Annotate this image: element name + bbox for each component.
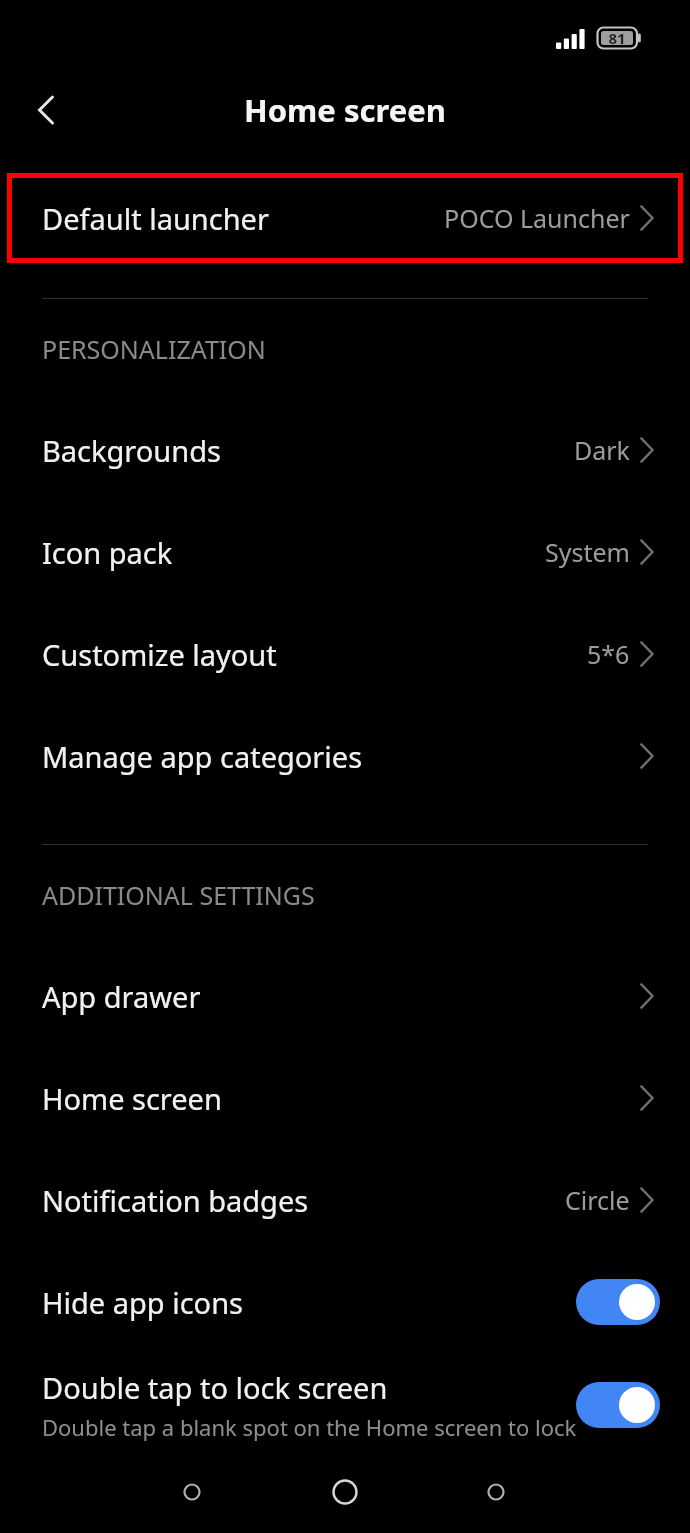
button[interactable]: App drawer xyxy=(0,945,690,1047)
button[interactable]: Default launcher xyxy=(0,173,690,263)
staticText: App drawer xyxy=(42,977,201,1016)
button[interactable]: Backgrounds xyxy=(0,399,690,501)
button[interactable]: Home screen xyxy=(0,1047,690,1149)
staticText: POCO Launcher xyxy=(444,201,630,235)
staticText: Hide app icons xyxy=(42,1283,243,1322)
staticText: Default launcher xyxy=(42,199,269,238)
staticText: Dark xyxy=(574,433,630,467)
staticText: Home screen xyxy=(244,89,446,131)
button[interactable]: Home xyxy=(319,1466,371,1518)
staticText: PERSONALIZATION xyxy=(42,332,266,366)
staticText: Home screen xyxy=(42,1079,222,1118)
button[interactable]: Back xyxy=(22,86,70,134)
button[interactable]: Toggle Hide app icons xyxy=(576,1279,660,1325)
staticText: ADDITIONAL SETTINGS xyxy=(42,878,315,912)
button[interactable]: Toggle Double tap to lock screen xyxy=(576,1382,660,1428)
staticText: System xyxy=(545,535,630,569)
staticText: Circle xyxy=(565,1183,630,1217)
staticText: Double tap to lock screen xyxy=(42,1368,388,1407)
button[interactable]: Recent apps xyxy=(472,1468,520,1516)
staticText: Double tap a blank spot on the Home scre… xyxy=(42,1412,577,1442)
button[interactable]: Back xyxy=(168,1468,216,1516)
staticText: Icon pack xyxy=(42,533,173,572)
button[interactable]: Icon pack xyxy=(0,501,690,603)
button[interactable]: Double tap to lock screen xyxy=(0,1353,690,1457)
staticText: Notification badges xyxy=(42,1181,309,1220)
staticText: Customize layout xyxy=(42,635,277,674)
button[interactable]: Notification badges xyxy=(0,1149,690,1251)
staticText: Backgrounds xyxy=(42,431,221,470)
staticText: 81 xyxy=(608,28,626,48)
button[interactable]: Hide app icons xyxy=(0,1251,690,1353)
button[interactable]: Manage app categories xyxy=(0,705,690,807)
button[interactable]: Customize layout xyxy=(0,603,690,705)
staticText: 5*6 xyxy=(587,637,630,671)
staticText: Manage app categories xyxy=(42,737,363,776)
